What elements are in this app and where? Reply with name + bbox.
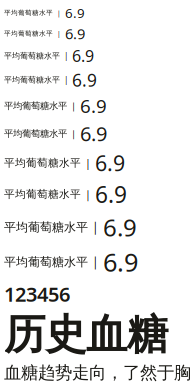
staticText: 血糖趋势走向，了然于胸 <box>4 362 191 383</box>
staticText: 平均葡萄糖水平 <box>4 75 60 85</box>
staticText: | <box>71 100 76 112</box>
staticText: 平均葡萄糖水平 <box>4 9 53 17</box>
staticText: 6.9 <box>103 245 138 279</box>
staticText: 平均葡萄糖水平 <box>4 255 88 269</box>
staticText: 6.9 <box>65 4 85 22</box>
staticText: | <box>64 50 68 61</box>
staticText: | <box>85 156 91 170</box>
staticText: 6.9 <box>72 68 97 91</box>
staticText: 平均葡萄糖水平 <box>4 220 88 234</box>
staticText: 6.9 <box>80 120 107 147</box>
staticText: 6.9 <box>80 93 107 118</box>
staticText: | <box>57 8 61 17</box>
staticText: 平均葡萄糖水平 <box>4 100 67 112</box>
staticText: | <box>71 127 76 140</box>
staticText: 历史血糖 <box>4 309 168 360</box>
staticText: | <box>57 29 61 38</box>
staticText: 123456 <box>4 281 70 307</box>
staticText: | <box>85 187 91 201</box>
staticText: | <box>92 219 99 235</box>
staticText: 平均葡萄糖水平 <box>4 156 81 169</box>
staticText: 6.9 <box>95 149 125 177</box>
staticText: 6.9 <box>103 211 137 243</box>
staticText: 平均葡萄糖水平 <box>4 29 53 38</box>
staticText: 6.9 <box>95 179 127 209</box>
staticText: 平均葡萄糖水平 <box>4 188 81 201</box>
staticText: 6.9 <box>72 45 94 66</box>
staticText: | <box>92 254 99 270</box>
staticText: 平均葡萄糖水平 <box>4 128 67 139</box>
staticText: 平均葡萄糖水平 <box>4 51 60 61</box>
staticText: | <box>64 75 68 85</box>
staticText: 6.9 <box>65 24 85 43</box>
